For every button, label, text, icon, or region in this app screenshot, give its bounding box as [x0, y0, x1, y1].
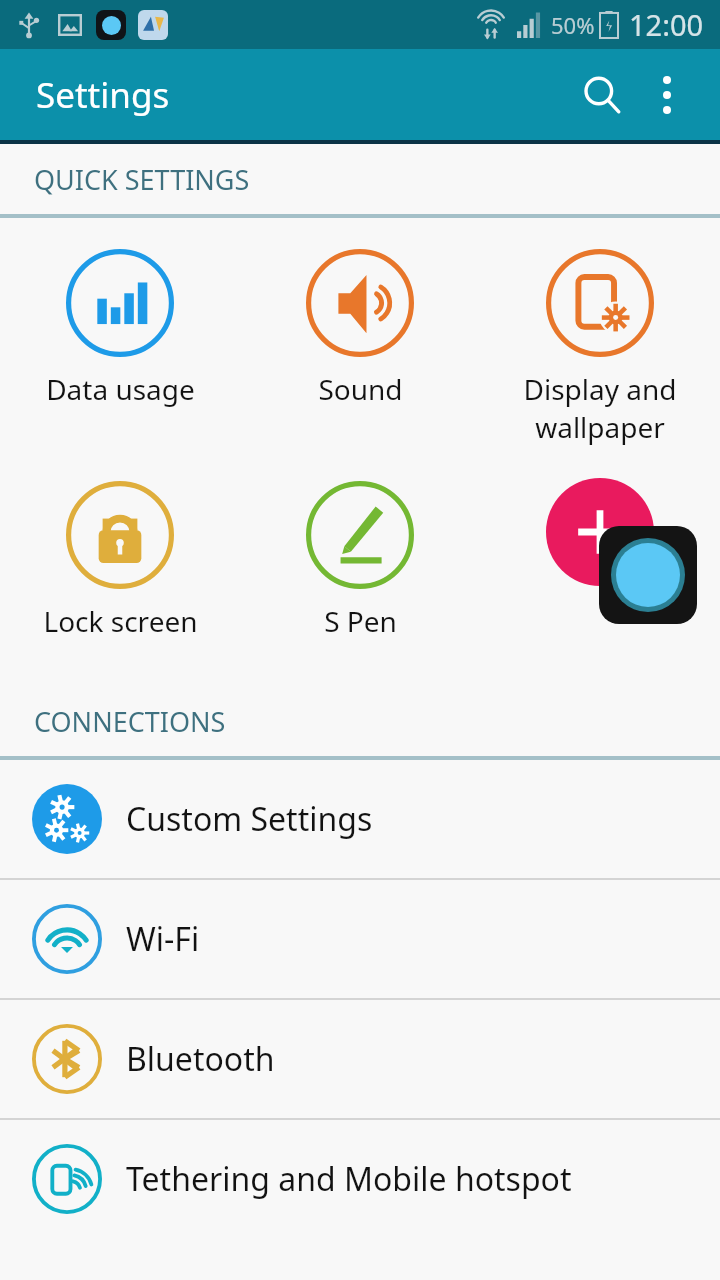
staticText: Data usage [46, 370, 195, 408]
staticText: 12:00 [629, 5, 704, 44]
staticText: 50% [551, 10, 595, 40]
button[interactable]: Display and wallpaper [480, 246, 720, 448]
staticText: Tethering and Mobile hotspot [126, 1157, 572, 1201]
button[interactable]: Bluetooth [0, 1000, 720, 1118]
button[interactable]: Add quick setting [546, 478, 654, 586]
staticText: S Pen [324, 602, 397, 640]
button[interactable]: Sound [240, 246, 480, 410]
button[interactable]: Lock screen [0, 478, 240, 642]
staticText: Display and wallpaper [523, 370, 677, 446]
staticText: Custom Settings [126, 797, 373, 841]
staticText: Settings [36, 71, 170, 119]
staticText: Lock screen [43, 602, 198, 640]
staticText: Bluetooth [126, 1037, 275, 1081]
staticText: QUICK SETTINGS [34, 161, 250, 198]
button[interactable]: Wi-Fi [0, 880, 720, 998]
staticText: Wi-Fi [126, 917, 200, 961]
button[interactable]: Data usage [0, 246, 240, 410]
staticText: CONNECTIONS [34, 703, 226, 740]
button[interactable]: Custom Settings [0, 760, 720, 878]
button[interactable]: S Pen [240, 478, 480, 642]
button[interactable]: Tethering and Mobile hotspot [0, 1120, 720, 1238]
button[interactable]: More options [636, 64, 698, 126]
button[interactable]: Floating assistant [599, 526, 697, 624]
button[interactable]: Search [568, 61, 636, 129]
staticText: Sound [318, 370, 403, 408]
